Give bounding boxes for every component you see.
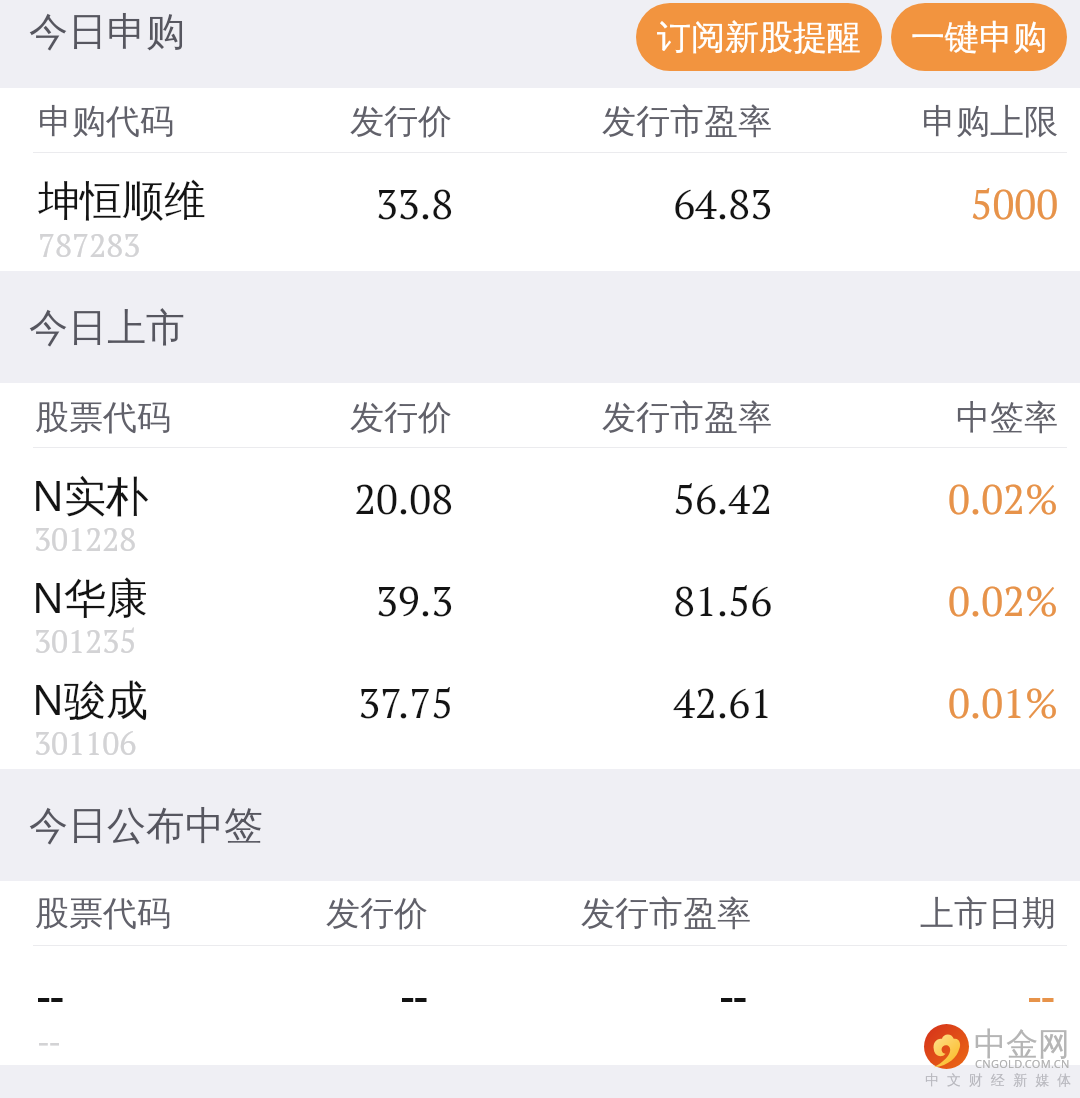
staticText: 0.02% xyxy=(738,471,1058,525)
button[interactable]: N实朴 xyxy=(0,448,1080,550)
staticText: 股票代码 xyxy=(35,396,171,439)
staticText: 发行价 xyxy=(108,892,428,935)
button[interactable]: 暂无数据 xyxy=(0,946,1080,1065)
button[interactable]: 一键申购 xyxy=(891,3,1067,71)
staticText: 301235 xyxy=(34,620,137,662)
staticText: 坤恒顺维 xyxy=(38,175,206,228)
staticText: 发行市盈率 xyxy=(452,100,772,143)
staticText: 中 文 财 经 新 媒 体 xyxy=(925,1070,1074,1089)
staticText: 37.75 xyxy=(133,675,453,729)
staticText: 20.08 xyxy=(133,471,453,525)
staticText: 0.01% xyxy=(738,675,1058,729)
staticText: 发行市盈率 xyxy=(431,892,751,935)
staticText: N华康 xyxy=(32,568,148,625)
staticText: 301106 xyxy=(34,722,137,764)
staticText: 中签率 xyxy=(738,396,1058,439)
button[interactable]: 坤恒顺维 xyxy=(0,153,1080,271)
staticText: 股票代码 xyxy=(35,892,171,935)
staticText: N实朴 xyxy=(32,466,148,523)
staticText: 申购上限 xyxy=(738,100,1058,143)
staticText: 一键申购 xyxy=(911,16,1047,59)
staticText: 发行价 xyxy=(132,396,452,439)
staticText: 787283 xyxy=(38,224,141,266)
staticText: 0.02% xyxy=(738,573,1058,627)
button[interactable]: N骏成 xyxy=(0,652,1080,754)
button[interactable]: N华康 xyxy=(0,550,1080,652)
other: 中金网 logo xyxy=(924,1024,969,1069)
staticText: 中金网 xyxy=(974,1024,1070,1064)
staticText: 今日申购 xyxy=(29,7,185,56)
staticText: 发行市盈率 xyxy=(452,396,772,439)
staticText: 301228 xyxy=(34,518,137,560)
staticText: 42.61 xyxy=(452,675,772,729)
staticText: 81.56 xyxy=(452,573,772,627)
staticText: CNGOLD.COM.CN xyxy=(975,1056,1070,1071)
staticText: N骏成 xyxy=(32,670,148,727)
staticText: 今日公布中签 xyxy=(29,801,263,850)
staticText: 56.42 xyxy=(452,471,772,525)
button[interactable]: 订阅新股提醒 xyxy=(636,3,882,71)
staticText: 上市日期 xyxy=(736,892,1056,935)
staticText: 5000 xyxy=(738,176,1058,230)
staticText: 申购代码 xyxy=(38,100,174,143)
staticText: 订阅新股提醒 xyxy=(657,16,861,59)
staticText: 64.83 xyxy=(452,176,772,230)
staticText: 39.3 xyxy=(133,573,453,627)
staticText: 发行价 xyxy=(132,100,452,143)
staticText: 33.8 xyxy=(133,176,453,230)
staticText: 今日上市 xyxy=(29,303,185,352)
